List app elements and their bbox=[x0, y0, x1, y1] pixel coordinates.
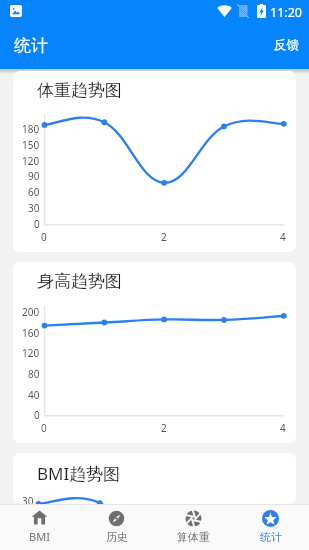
staticText: 80 bbox=[28, 367, 40, 381]
staticText: 180 bbox=[22, 122, 40, 136]
staticText: BMI趋势图 bbox=[37, 462, 121, 485]
staticText: 40 bbox=[28, 388, 40, 402]
button[interactable]: 体重趋势图 bbox=[13, 71, 296, 252]
staticText: 0 bbox=[41, 230, 47, 244]
staticText: 90 bbox=[28, 169, 40, 183]
staticText: 30 bbox=[22, 494, 34, 504]
button[interactable]: 算体重 bbox=[155, 505, 232, 550]
staticText: 30 bbox=[28, 201, 40, 215]
staticText: 身高趋势图 bbox=[37, 271, 122, 292]
button[interactable]: 历史 bbox=[78, 505, 155, 550]
staticText: 4 bbox=[280, 421, 286, 435]
button[interactable]: BMI bbox=[0, 505, 78, 550]
staticText: 0 bbox=[34, 408, 40, 422]
staticText: 统计 bbox=[260, 530, 282, 544]
staticText: 算体重 bbox=[177, 530, 210, 544]
button[interactable]: 统计 bbox=[232, 505, 309, 550]
staticText: 2 bbox=[161, 230, 167, 244]
staticText: 60 bbox=[28, 185, 40, 199]
staticText: 160 bbox=[22, 326, 40, 340]
staticText: 历史 bbox=[106, 530, 128, 544]
staticText: 0 bbox=[34, 217, 40, 231]
staticText: 11:20 bbox=[270, 4, 302, 21]
staticText: 200 bbox=[22, 305, 40, 319]
staticText: 反馈 bbox=[274, 37, 299, 53]
button[interactable]: 身高趋势图 bbox=[13, 262, 296, 443]
staticText: 150 bbox=[22, 138, 40, 152]
staticText: 0 bbox=[41, 421, 47, 435]
staticText: 120 bbox=[22, 346, 40, 360]
button[interactable]: 反馈 bbox=[262, 21, 309, 69]
staticText: 体重趋势图 bbox=[37, 80, 122, 101]
staticText: BMI bbox=[29, 529, 50, 544]
staticText: 2 bbox=[161, 421, 167, 435]
button[interactable]: BMI趋势图 bbox=[13, 453, 296, 504]
staticText: 120 bbox=[22, 154, 40, 168]
staticText: 4 bbox=[280, 230, 286, 244]
staticText: 统计 bbox=[14, 35, 48, 56]
